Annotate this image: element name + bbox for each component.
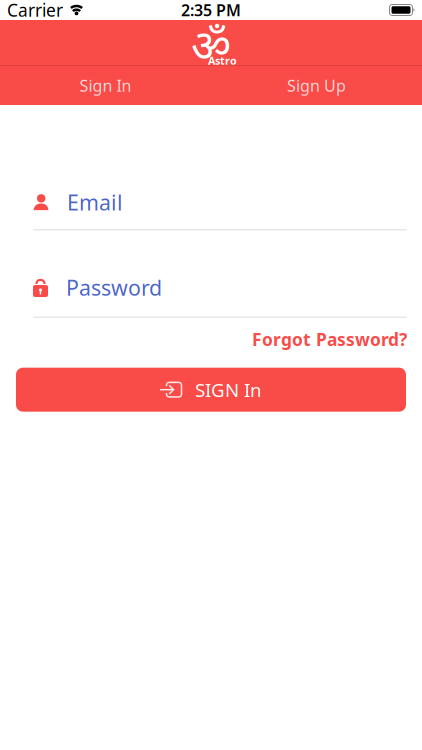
staticText: Email bbox=[67, 188, 123, 216]
staticText: Sign Up bbox=[287, 75, 346, 96]
staticText: ॐ bbox=[191, 15, 231, 74]
staticText: Sign In bbox=[79, 75, 131, 96]
staticText: Astro bbox=[208, 53, 237, 68]
staticText: Forgot Password? bbox=[252, 328, 407, 351]
staticText: Carrier bbox=[7, 0, 63, 21]
staticText: SIGN In bbox=[195, 377, 262, 402]
button[interactable]: Sign In bbox=[0, 66, 211, 105]
button[interactable]: Password bbox=[33, 273, 407, 302]
staticText: Password bbox=[66, 273, 162, 302]
button[interactable]: Sign Up bbox=[211, 66, 422, 105]
staticText: 2:35 PM bbox=[181, 0, 241, 21]
button[interactable]: Email bbox=[33, 188, 407, 216]
button[interactable]: SIGN In bbox=[16, 368, 406, 412]
button[interactable]: Forgot Password? bbox=[252, 328, 407, 351]
